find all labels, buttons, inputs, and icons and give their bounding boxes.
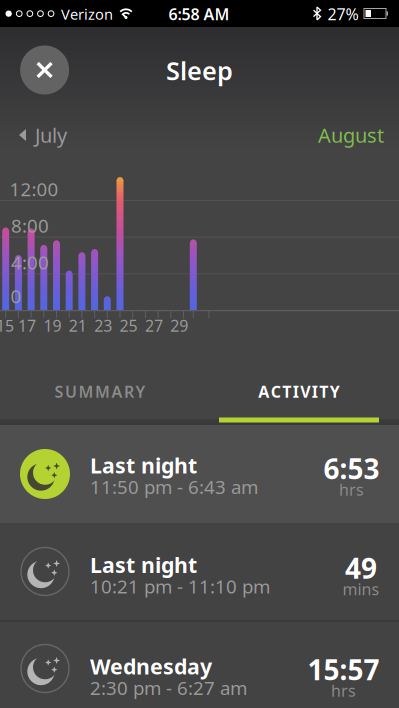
staticText: 12:00 bbox=[9, 177, 58, 201]
staticText: 21 bbox=[69, 315, 87, 336]
staticText: SUMMARY bbox=[54, 381, 145, 402]
staticText: 11:50 pm - 6:43 am bbox=[90, 474, 258, 499]
staticText: mins bbox=[342, 578, 379, 600]
staticText: 6:58 AM bbox=[168, 3, 229, 25]
button[interactable]: SUMMARY bbox=[0, 360, 199, 422]
button[interactable]: Previous month, July bbox=[19, 122, 67, 148]
staticText: 15:57 bbox=[307, 651, 379, 688]
staticText: 0 bbox=[10, 284, 21, 308]
staticText: 17 bbox=[18, 315, 36, 336]
staticText: 27% bbox=[327, 3, 358, 25]
button[interactable]: Close bbox=[20, 45, 69, 94]
staticText: hrs bbox=[331, 680, 356, 701]
staticText: 19 bbox=[43, 315, 61, 336]
staticText: Last night bbox=[90, 451, 197, 479]
staticText: 25 bbox=[119, 315, 137, 336]
staticText: August bbox=[318, 122, 384, 148]
staticText: 23 bbox=[94, 315, 112, 336]
staticText: Wednesday bbox=[90, 652, 212, 680]
staticText: Verizon bbox=[61, 4, 113, 24]
staticText: Sleep bbox=[166, 54, 233, 87]
staticText: 4:00 bbox=[11, 250, 49, 275]
staticText: 27 bbox=[145, 315, 163, 336]
staticText: Last night bbox=[90, 550, 197, 579]
staticText: 49 bbox=[345, 549, 377, 586]
button[interactable]: Last night bbox=[0, 425, 399, 523]
staticText: hrs bbox=[339, 479, 364, 500]
staticText: July bbox=[35, 122, 67, 148]
staticText: 6:53 bbox=[323, 450, 379, 487]
staticText: 8:00 bbox=[11, 213, 49, 238]
staticText: ACTIVITY bbox=[258, 381, 340, 402]
button[interactable]: August bbox=[318, 122, 384, 148]
staticText: 15 bbox=[0, 315, 14, 336]
staticText: 2:30 pm - 6:27 am bbox=[90, 675, 247, 700]
staticText: 10:21 pm - 11:10 pm bbox=[90, 574, 270, 599]
button[interactable]: Wednesday bbox=[0, 620, 399, 708]
button[interactable]: ACTIVITY bbox=[199, 360, 398, 422]
staticText: 29 bbox=[170, 315, 188, 336]
button[interactable]: Last night bbox=[0, 523, 399, 620]
